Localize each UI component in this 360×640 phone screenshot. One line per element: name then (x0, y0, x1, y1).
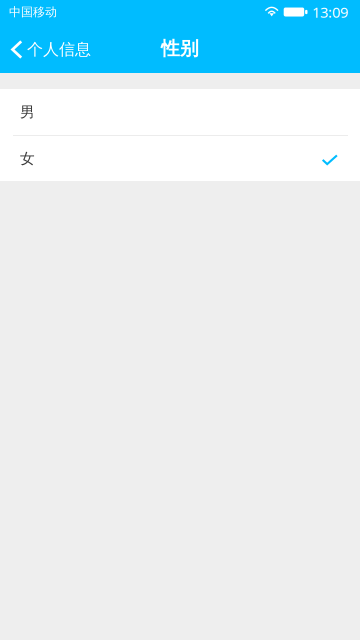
staticText: 男 (20, 103, 35, 121)
staticText: 女 (20, 149, 35, 167)
staticText: 性别 (161, 37, 199, 60)
staticText: 中国移动 (9, 5, 57, 19)
staticText: 13:09 (312, 2, 348, 22)
staticText: 个人信息 (27, 40, 91, 59)
button[interactable]: 个人信息 (0, 24, 101, 73)
button[interactable]: 女 (0, 136, 360, 181)
button[interactable]: 男 (0, 89, 360, 135)
